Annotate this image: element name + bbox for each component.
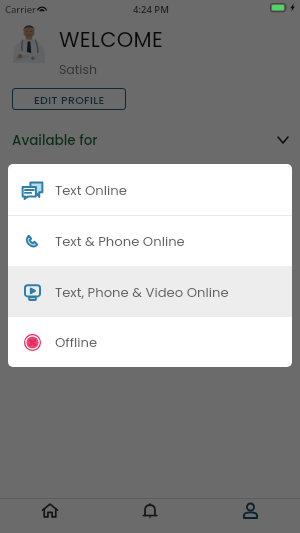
staticText: Satish xyxy=(59,61,97,78)
staticText: WELCOME xyxy=(59,25,164,54)
staticText: Text & Phone Online xyxy=(55,232,185,250)
staticText: EDIT PROFILE xyxy=(34,92,105,107)
staticText: Text Online xyxy=(55,181,127,199)
staticText: Text, Phone & Video Online xyxy=(55,283,229,301)
button[interactable]: Available for xyxy=(0,122,300,158)
staticText: 4:24 PM xyxy=(133,3,169,16)
staticText: Carrier xyxy=(5,3,36,16)
button[interactable]: Text & Phone Online xyxy=(8,216,292,266)
button[interactable]: Profile xyxy=(200,499,300,533)
staticText: Available for xyxy=(12,131,98,150)
staticText: Offline xyxy=(55,333,98,351)
button[interactable]: Text Online xyxy=(8,164,292,215)
button[interactable]: Home xyxy=(0,499,100,533)
button[interactable]: Notifications xyxy=(100,499,200,533)
button[interactable]: Text, Phone & Video Online xyxy=(8,266,292,317)
button[interactable]: EDIT PROFILE xyxy=(12,88,126,110)
button[interactable]: Offline xyxy=(8,317,292,367)
